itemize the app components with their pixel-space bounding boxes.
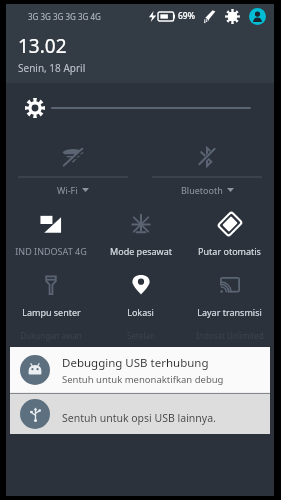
- button[interactable]: Lokasi: [96, 271, 185, 320]
- other: Screen record: [203, 10, 216, 23]
- staticText: 3G 3G 3G 3G 3G 4G: [28, 11, 101, 22]
- staticText: Setelan: [127, 330, 155, 341]
- button[interactable]: Mode pesawat: [96, 210, 185, 259]
- staticText: Debugging USB terhubung: [62, 355, 209, 371]
- staticText: Bluetooth: [181, 184, 223, 196]
- staticText: Layar transmisi: [197, 306, 262, 318]
- button[interactable]: Brightness: [24, 97, 46, 119]
- button[interactable]: Sentuh untuk opsi USB lainnya.: [10, 394, 270, 434]
- staticText: Wi-Fi: [57, 184, 78, 196]
- staticText: 69%: [178, 10, 195, 22]
- button[interactable]: IND INDOSAT 4G: [6, 210, 96, 259]
- button[interactable]: Layar transmisi: [185, 271, 274, 320]
- button[interactable]: Debugging USB terhubung: [10, 347, 270, 393]
- button[interactable]: Bluetooth: [140, 145, 274, 196]
- staticText: 13.02: [18, 33, 67, 59]
- button[interactable]: Lampu senter: [6, 271, 96, 320]
- button[interactable]: Wi-Fi: [6, 145, 140, 196]
- staticText: IND INDOSAT 4G: [15, 245, 87, 257]
- button[interactable]: Putar otomatis: [185, 210, 274, 259]
- button[interactable]: [52, 98, 250, 118]
- staticText: Dukungan awan: [20, 330, 82, 341]
- button[interactable]: User: [249, 8, 266, 25]
- staticText: Mode pesawat: [110, 245, 172, 257]
- staticText: Sentuh untuk opsi USB lainnya.: [62, 411, 216, 425]
- staticText: Putar otomatis: [198, 245, 261, 257]
- button[interactable]: Settings: [225, 9, 240, 24]
- staticText: Indosat Unlimited: [196, 330, 264, 341]
- staticText: Lokasi: [127, 306, 154, 318]
- staticText: Lampu senter: [22, 306, 81, 318]
- staticText: Sentuh untuk menonaktifkan debug: [62, 373, 224, 386]
- staticText: Senin, 18 April: [18, 61, 86, 75]
